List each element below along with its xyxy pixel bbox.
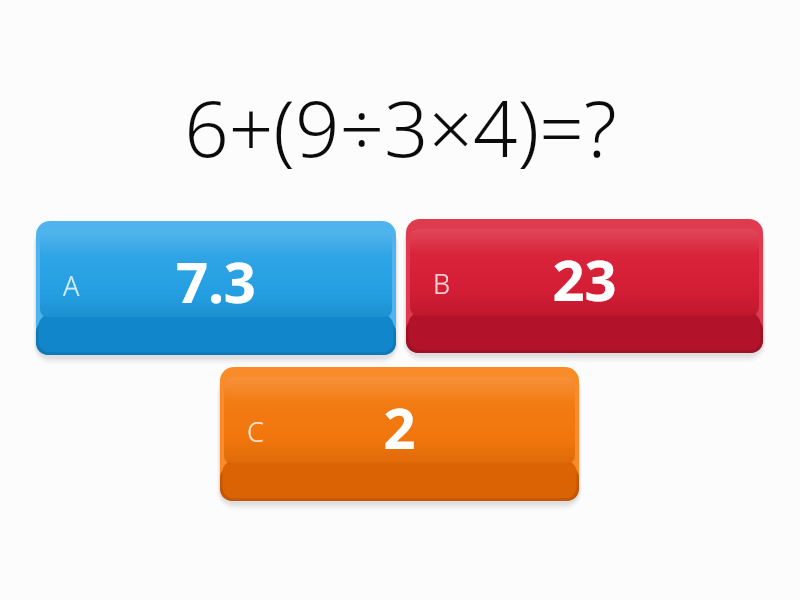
button[interactable]: C (220, 367, 579, 501)
staticText: 2 (383, 389, 416, 465)
staticText: 23 (552, 241, 617, 317)
staticText: C (247, 413, 264, 450)
staticText: 6+(9÷3×4)=? (184, 74, 617, 174)
button[interactable]: A (36, 221, 396, 355)
staticText: 7.3 (176, 243, 256, 319)
staticText: B (433, 265, 451, 302)
button[interactable]: B (406, 219, 763, 353)
staticText: A (63, 267, 80, 304)
